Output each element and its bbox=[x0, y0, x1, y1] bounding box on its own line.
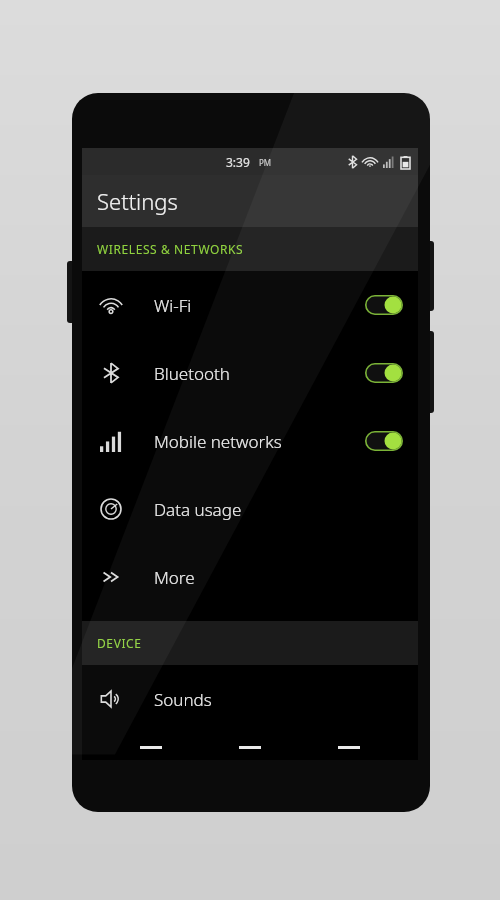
staticText: DEVICE bbox=[97, 635, 142, 651]
button[interactable]: Navigation button bbox=[319, 735, 379, 760]
button[interactable]: Navigation button bbox=[220, 735, 280, 760]
button[interactable]: Toggle bbox=[365, 295, 403, 315]
button[interactable]: Toggle bbox=[365, 363, 403, 383]
staticText: Settings bbox=[97, 186, 178, 216]
button[interactable]: Wi-Fi bbox=[82, 271, 418, 339]
staticText: More bbox=[154, 566, 195, 589]
staticText: Mobile networks bbox=[154, 430, 282, 453]
staticText: PM bbox=[259, 157, 272, 168]
button[interactable]: Data usage bbox=[82, 475, 418, 543]
button[interactable]: Bluetooth bbox=[82, 339, 418, 407]
button[interactable]: Navigation button bbox=[121, 735, 181, 760]
staticText: 3:39 bbox=[226, 154, 250, 170]
button[interactable]: Toggle bbox=[365, 431, 403, 451]
button[interactable]: Sounds bbox=[82, 665, 418, 733]
button[interactable]: More bbox=[82, 543, 418, 611]
staticText: Wi-Fi bbox=[154, 294, 192, 317]
staticText: WIRELESS & NETWORKS bbox=[97, 241, 244, 257]
button[interactable]: Mobile networks bbox=[82, 407, 418, 475]
staticText: Sounds bbox=[154, 688, 212, 711]
staticText: Bluetooth bbox=[154, 362, 230, 385]
staticText: Data usage bbox=[154, 498, 242, 521]
